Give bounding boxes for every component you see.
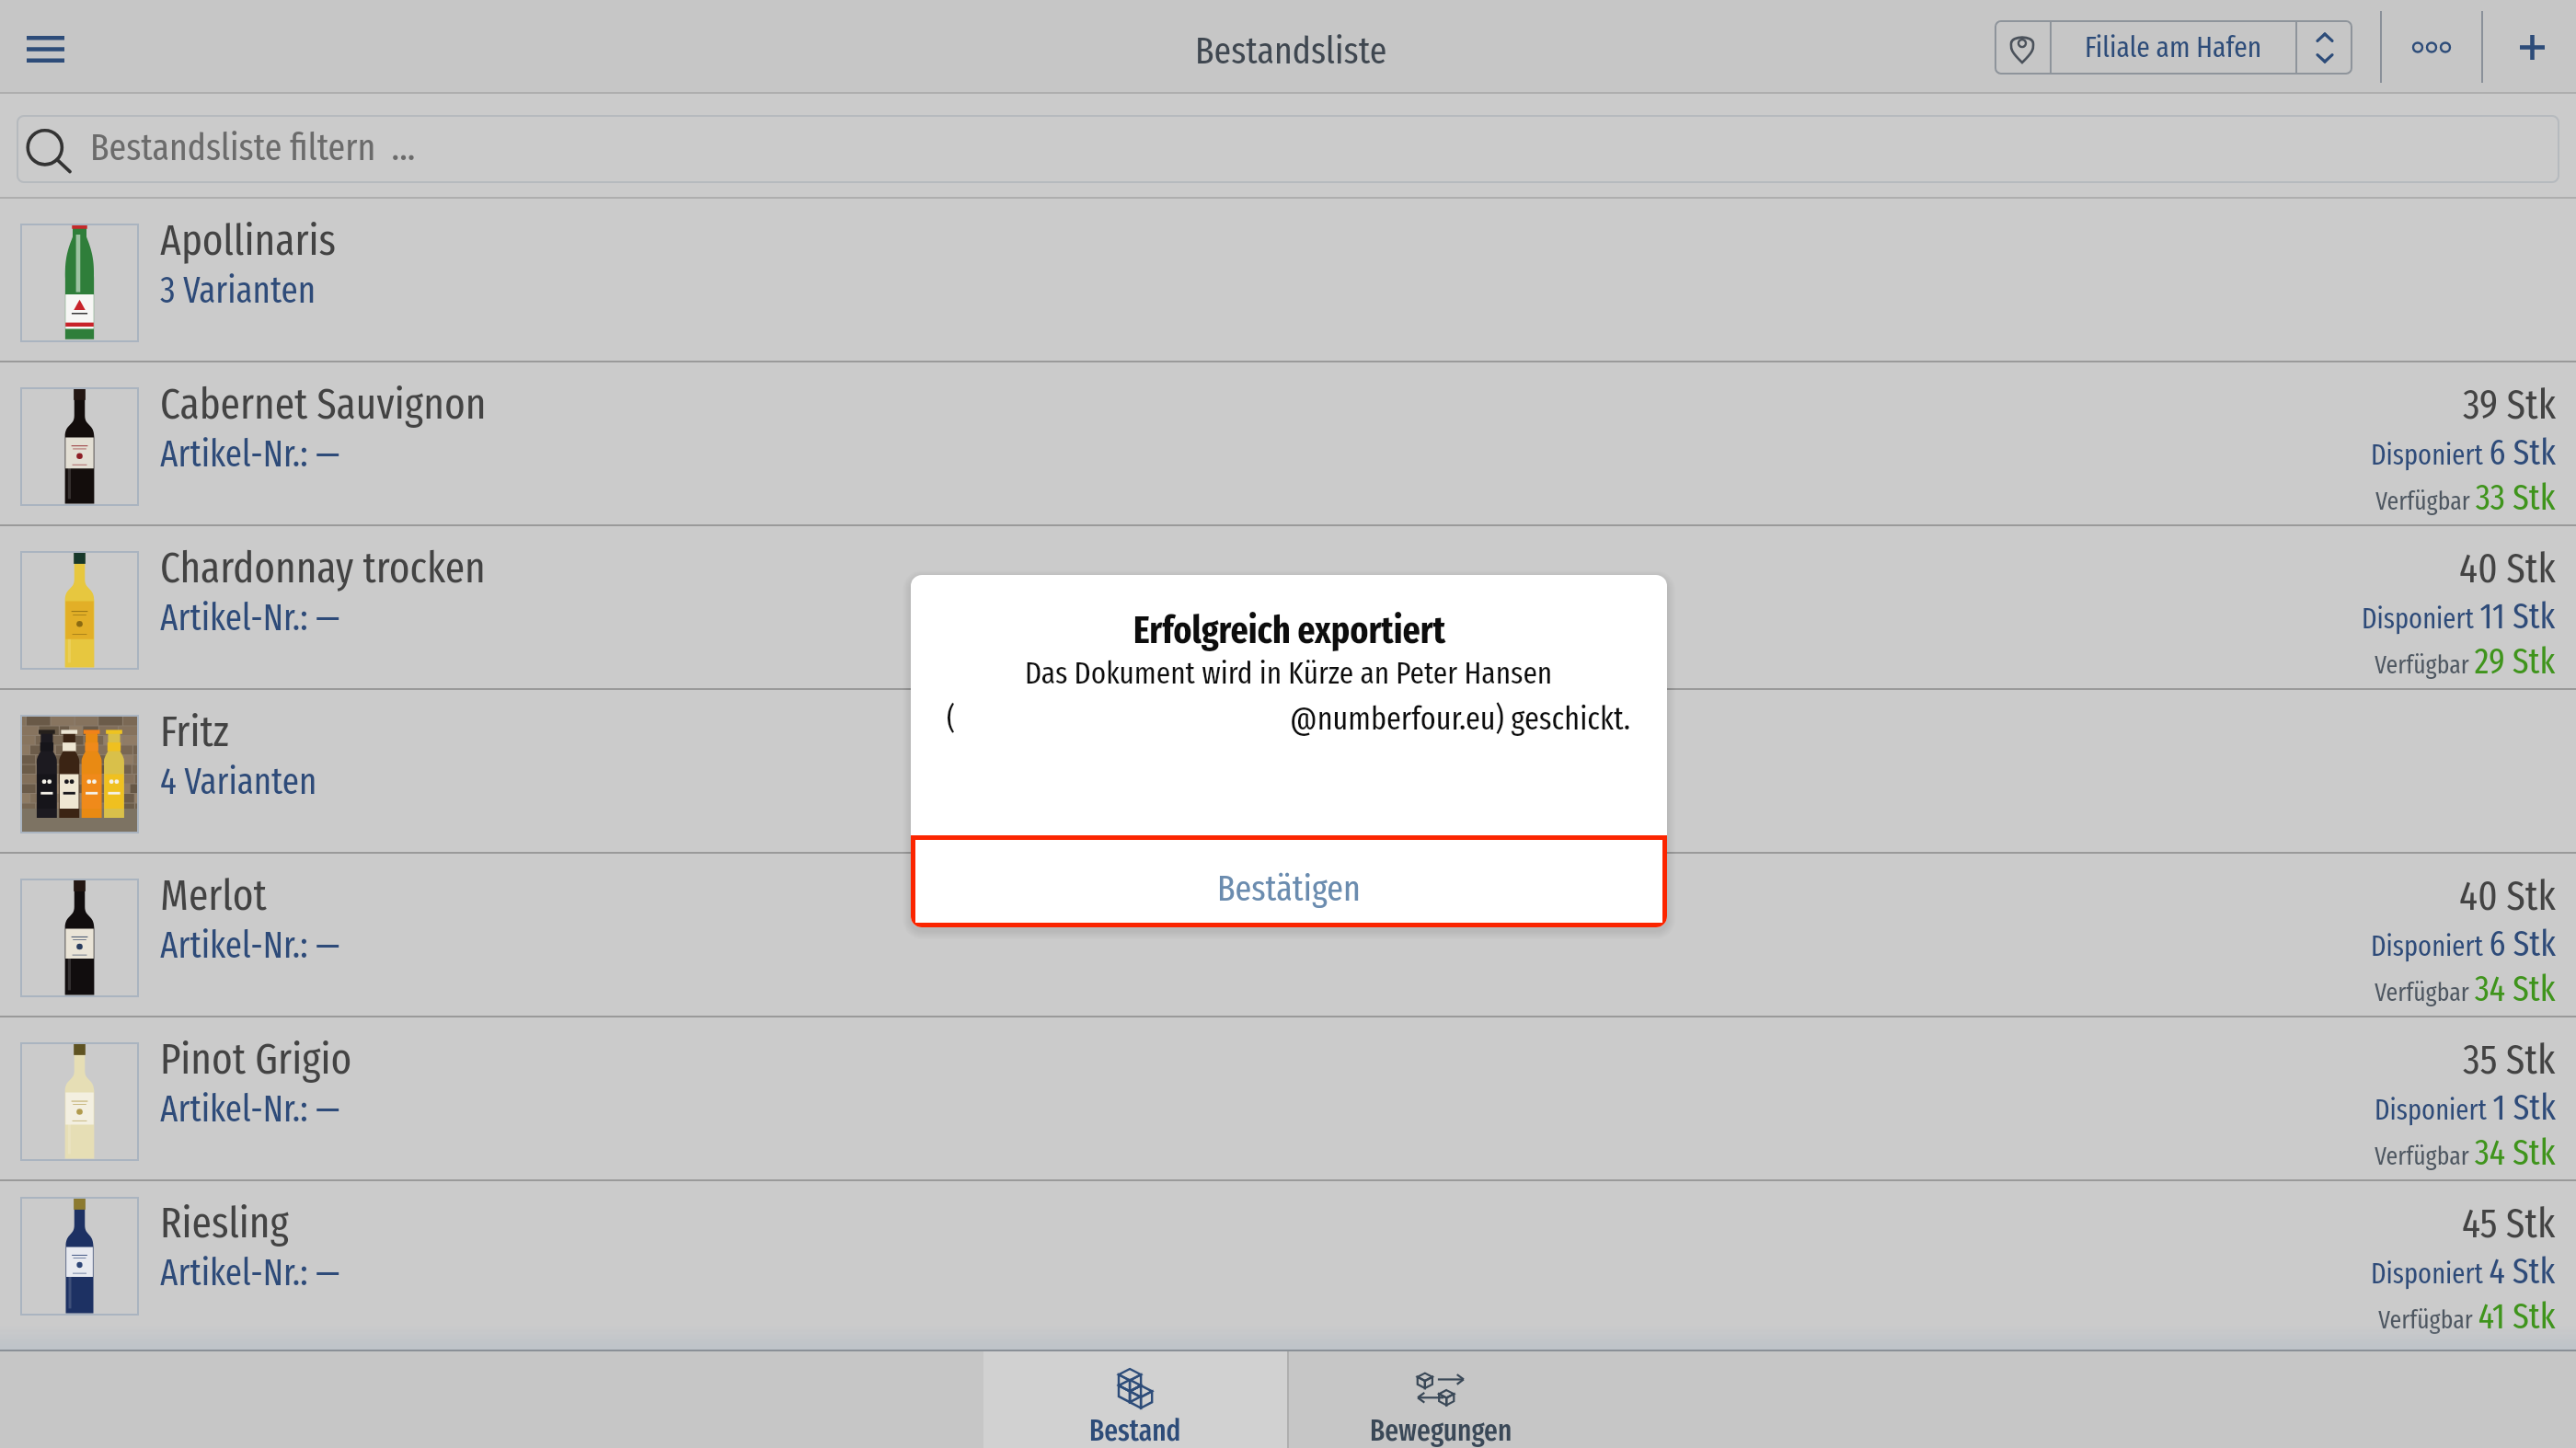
staticText: Disponiert 1 Stk	[2375, 1086, 2556, 1130]
staticText: Verfügbar 34 Stk	[2375, 1132, 2556, 1175]
button[interactable]: Riesling	[0, 1181, 2576, 1326]
staticText: Verfügbar 34 Stk	[2375, 968, 2556, 1011]
button[interactable]: Fritz	[0, 690, 2576, 852]
staticText: Disponiert 11 Stk	[2362, 595, 2556, 638]
staticText: 35 Stk	[2463, 1035, 2556, 1085]
staticText: @numberfour.eu) geschickt.	[1290, 699, 1631, 738]
button[interactable]: Cabernet Sauvignon	[0, 362, 2576, 524]
staticText: Riesling	[160, 1197, 289, 1248]
staticText: Artikel-Nr.: —	[160, 1087, 340, 1132]
staticText: Pinot Grigio	[160, 1033, 352, 1085]
staticText: 40 Stk	[2459, 871, 2556, 921]
staticText: 39 Stk	[2463, 380, 2556, 430]
staticText: Artikel-Nr.: —	[160, 924, 340, 968]
button[interactable]: Pinot Grigio	[0, 1017, 2576, 1179]
staticText: 45 Stk	[2462, 1199, 2556, 1248]
staticText: Erfolgreich exportiert	[1133, 608, 1445, 653]
button[interactable]: Bestätigen	[911, 835, 1667, 927]
button[interactable]: Filiale am Hafen	[1995, 20, 2352, 75]
staticText: Filiale am Hafen	[2085, 29, 2262, 64]
staticText: Disponiert 6 Stk	[2371, 923, 2556, 966]
button[interactable]: Bestandsliste filtern ...	[17, 115, 2559, 183]
staticText: Bestandsliste filtern ...	[90, 125, 416, 170]
staticText: Bestand	[1089, 1413, 1181, 1448]
staticText: Fritz	[160, 706, 229, 757]
staticText: Bewegungen	[1370, 1413, 1512, 1448]
button[interactable]: Menü	[4, 4, 86, 90]
staticText: Artikel-Nr.: —	[160, 432, 340, 477]
button[interactable]: Merlot	[0, 854, 2576, 1016]
button[interactable]: Apollinaris	[0, 199, 2576, 361]
staticText: Apollinaris	[160, 214, 337, 266]
staticText: 40 Stk	[2459, 544, 2556, 593]
staticText: Disponiert 6 Stk	[2371, 431, 2556, 475]
staticText: Disponiert 4 Stk	[2371, 1250, 2556, 1293]
button[interactable]: Weitere Optionen	[2382, 4, 2481, 90]
staticText: Artikel-Nr.: —	[160, 596, 340, 640]
staticText: Verfügbar 29 Stk	[2375, 640, 2556, 684]
staticText: Verfügbar 41 Stk	[2378, 1295, 2556, 1339]
staticText: 3 Varianten	[160, 269, 316, 313]
staticText: Artikel-Nr.: —	[160, 1251, 340, 1295]
staticText: Das Dokument wird in Kürze an Peter Hans…	[1025, 654, 1553, 692]
button[interactable]: Chardonnay trocken	[0, 526, 2576, 688]
staticText: Cabernet Sauvignon	[160, 378, 487, 430]
staticText: Bestandsliste	[1195, 29, 1387, 74]
staticText: (	[947, 699, 956, 737]
button[interactable]: Bestand	[983, 1351, 1287, 1448]
staticText: Verfügbar 33 Stk	[2375, 477, 2556, 520]
button[interactable]: Bewegungen	[1289, 1351, 1593, 1448]
staticText: Bestätigen	[1217, 868, 1361, 911]
button[interactable]: Hinzufügen	[2483, 4, 2576, 90]
staticText: Chardonnay trocken	[160, 542, 486, 593]
staticText: Merlot	[160, 869, 267, 921]
staticText: 4 Varianten	[160, 760, 317, 804]
